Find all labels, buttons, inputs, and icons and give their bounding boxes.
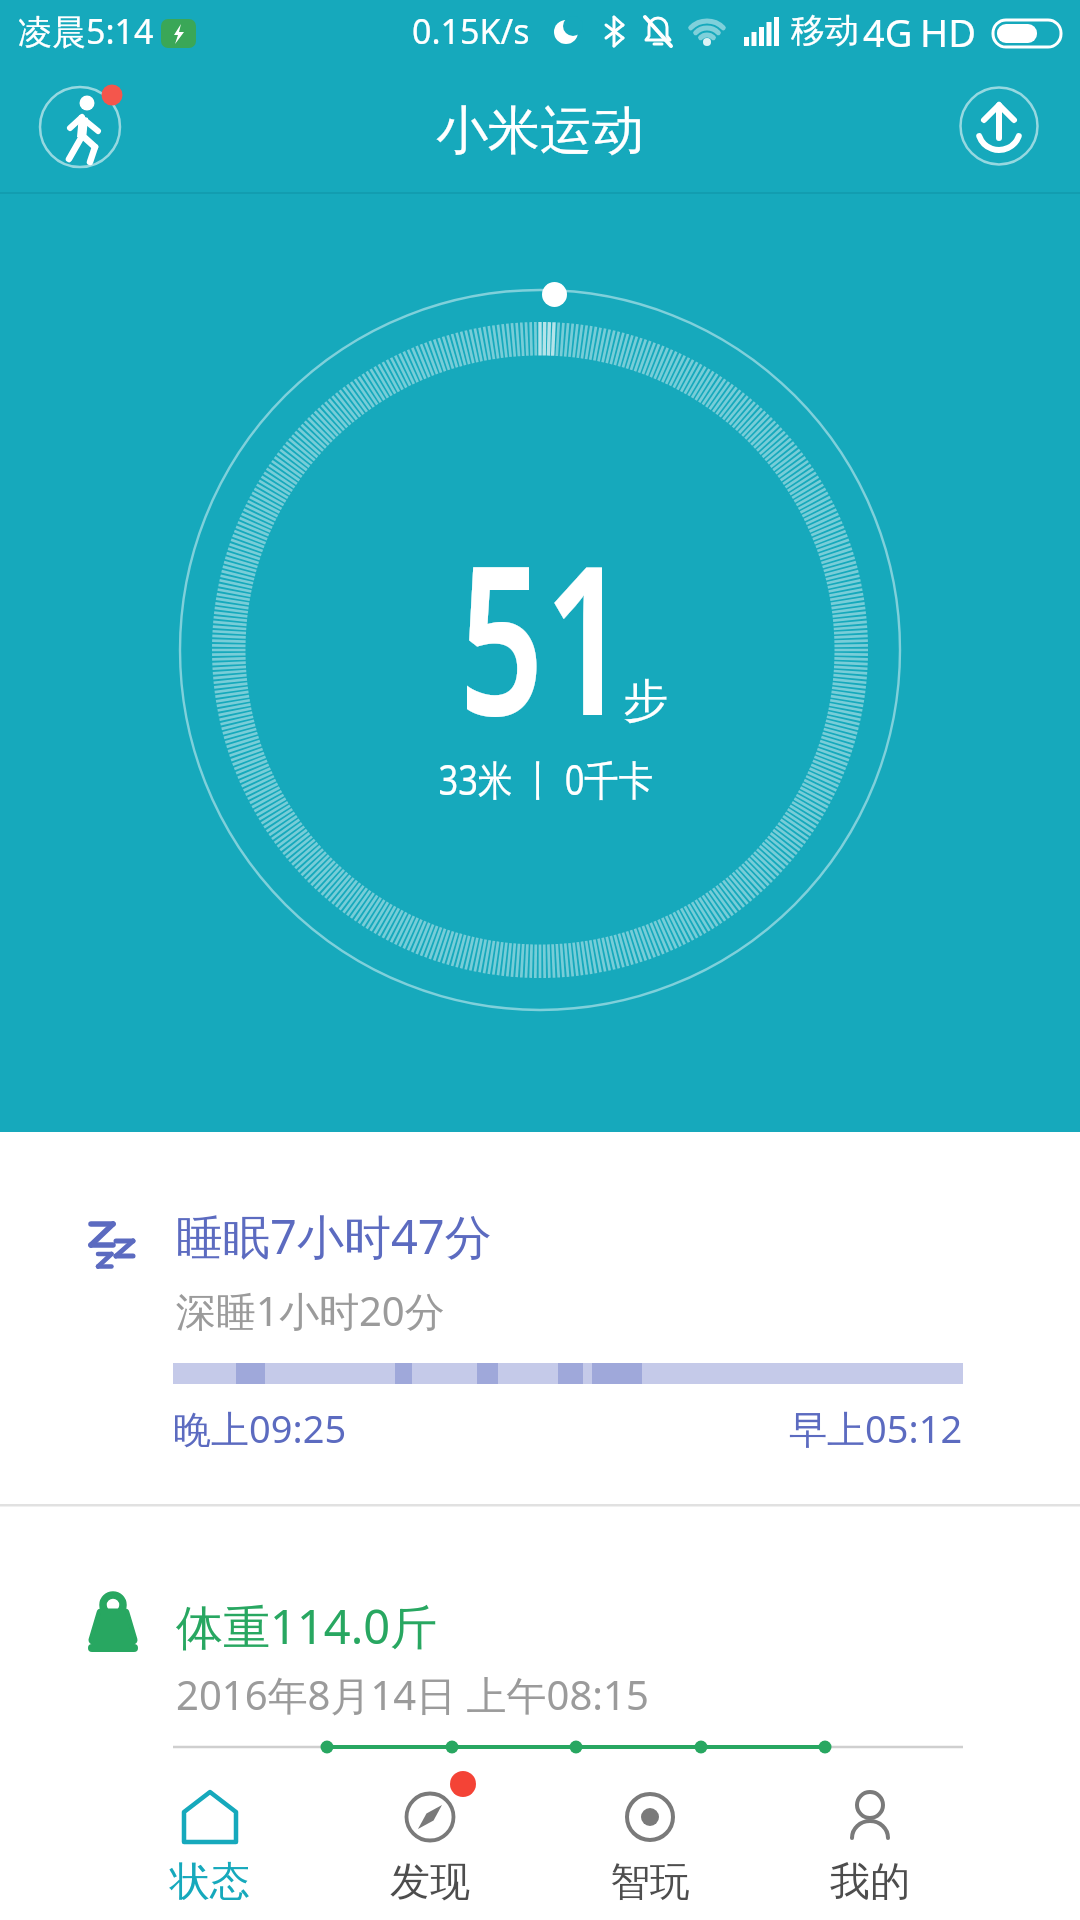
staticText: 晚上09:25	[173, 1402, 347, 1454]
staticText: 小米运动	[436, 98, 644, 158]
staticText: 深睡1小时20分	[176, 1283, 445, 1338]
staticText: 51	[459, 495, 629, 775]
staticText: 0.15K/s	[412, 8, 530, 52]
staticText: 33米 丨 0千卡	[438, 751, 653, 807]
staticText: 发现	[390, 1856, 470, 1906]
staticText: 智玩	[610, 1856, 690, 1906]
staticText: 步	[623, 673, 668, 730]
staticText: 4G	[863, 6, 913, 54]
staticText: 移动	[791, 9, 859, 52]
staticText: 体重114.0斤	[176, 1594, 438, 1652]
staticText: 我的	[830, 1856, 910, 1906]
staticText: HD	[920, 6, 976, 54]
staticText: 早上05:12	[789, 1402, 963, 1454]
staticText: 睡眠7小时47分	[176, 1204, 492, 1262]
staticText: 状态	[170, 1856, 250, 1906]
staticText: 2016年8月14日 上午08:15	[176, 1667, 649, 1722]
staticText: 凌晨5:14	[18, 8, 154, 52]
